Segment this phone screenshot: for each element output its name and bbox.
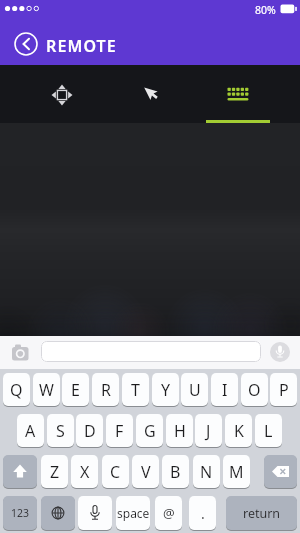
staticText: V [141, 461, 151, 483]
staticText: return [243, 505, 281, 522]
staticText: K [234, 420, 244, 442]
staticText: B [170, 461, 181, 483]
staticText: U [189, 379, 201, 401]
button[interactable]: @ [155, 496, 182, 531]
button[interactable]: A [17, 414, 44, 448]
staticText: X [80, 461, 90, 483]
button[interactable] [270, 342, 290, 362]
button[interactable]: U [181, 373, 208, 407]
button[interactable]: D [76, 414, 103, 448]
staticText: 123 [11, 506, 30, 520]
button[interactable]: G [136, 414, 163, 448]
button[interactable]: H [166, 414, 193, 448]
button[interactable] [41, 341, 261, 362]
button[interactable]: Q [3, 373, 30, 407]
button[interactable] [18, 65, 106, 123]
button[interactable] [3, 455, 37, 489]
button[interactable]: X [71, 455, 98, 489]
staticText: @ [163, 504, 175, 522]
staticText: O [248, 379, 261, 401]
staticText: D [84, 420, 96, 442]
button[interactable]: K [225, 414, 252, 448]
staticText: R [101, 379, 111, 401]
button[interactable]: S [47, 414, 74, 448]
button[interactable]: W [33, 373, 60, 407]
staticText: N [200, 461, 213, 483]
staticText: H [174, 420, 186, 442]
button[interactable] [106, 65, 194, 123]
button[interactable]: Z [41, 455, 68, 489]
staticText: . [201, 504, 205, 523]
button[interactable]: V [132, 455, 159, 489]
button[interactable] [13, 31, 39, 57]
button[interactable]: R [92, 373, 119, 407]
staticText: W [39, 379, 54, 401]
staticText: T [131, 379, 140, 401]
staticText: C [110, 461, 121, 483]
staticText: Y [161, 379, 171, 401]
button[interactable]: T [122, 373, 149, 407]
staticText: S [56, 420, 65, 442]
button[interactable] [41, 496, 75, 531]
staticText: REMOTE [46, 35, 117, 57]
staticText: P [279, 379, 289, 401]
button[interactable] [264, 455, 297, 489]
button[interactable]: . [189, 496, 216, 531]
button[interactable]: O [241, 373, 268, 407]
button[interactable]: E [62, 373, 89, 407]
staticText: F [115, 420, 124, 442]
button[interactable] [78, 496, 112, 531]
staticText: E [71, 379, 80, 401]
button[interactable]: J [195, 414, 222, 448]
staticText: 80% [255, 3, 276, 17]
button[interactable]: C [102, 455, 129, 489]
staticText: Q [10, 379, 23, 401]
button[interactable]: B [162, 455, 189, 489]
button[interactable]: P [270, 373, 297, 407]
button[interactable]: L [255, 414, 282, 448]
button[interactable] [194, 65, 282, 123]
staticText: G [144, 420, 156, 442]
staticText: space [117, 505, 150, 521]
staticText: J [206, 420, 211, 442]
button[interactable]: M [223, 455, 250, 489]
button[interactable]: N [193, 455, 220, 489]
button[interactable]: Y [152, 373, 179, 407]
button[interactable]: F [106, 414, 133, 448]
staticText: L [264, 420, 273, 442]
staticText: M [229, 461, 244, 483]
staticText: I [222, 379, 228, 401]
staticText: Z [50, 461, 60, 483]
staticText: A [25, 420, 36, 442]
button[interactable]: 123 [3, 496, 37, 531]
button[interactable]: return [226, 496, 297, 531]
button[interactable]: I [211, 373, 238, 407]
button[interactable]: space [116, 496, 150, 531]
button[interactable] [8, 341, 34, 363]
